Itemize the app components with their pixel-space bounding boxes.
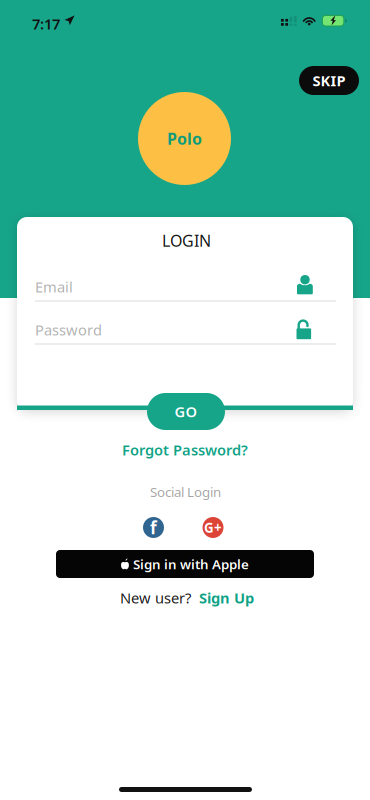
staticText: 7:17 xyxy=(32,14,60,33)
staticText: Sign Up xyxy=(199,588,254,607)
button[interactable]: Sign in with Apple xyxy=(56,550,314,578)
staticText: Polo xyxy=(167,128,202,149)
button[interactable]: Forgot Password? xyxy=(122,440,248,459)
staticText: New user? xyxy=(120,588,191,607)
button[interactable]: SKIP xyxy=(299,66,359,95)
staticText: SKIP xyxy=(312,71,345,90)
staticText: GO xyxy=(174,402,197,421)
staticText: Forgot Password? xyxy=(122,440,248,459)
staticText: Email xyxy=(35,277,73,296)
button[interactable]: Sign in with Google Plus xyxy=(202,517,223,538)
staticText: f xyxy=(150,516,157,539)
button[interactable]: Sign Up xyxy=(199,588,254,607)
staticText: Social Login xyxy=(150,483,221,501)
button[interactable]: GO xyxy=(147,393,225,430)
staticText: LOGIN xyxy=(162,230,211,251)
staticText: Password xyxy=(35,320,102,339)
staticText: Sign in with Apple xyxy=(133,555,249,573)
button[interactable]: Sign in with Facebook xyxy=(143,517,164,538)
staticText: G+ xyxy=(204,519,222,536)
